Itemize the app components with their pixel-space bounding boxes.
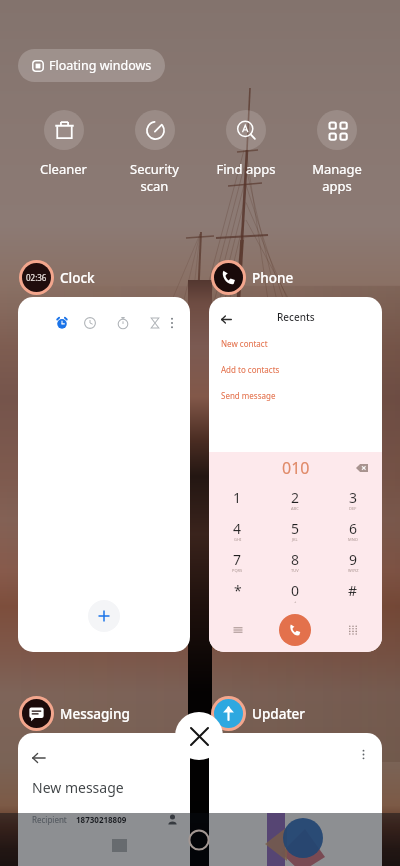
staticText: 4 xyxy=(233,519,242,538)
staticText: 9 xyxy=(349,550,358,569)
staticText: Clock xyxy=(60,269,95,287)
staticText: # xyxy=(348,581,358,600)
button[interactable]: 8 xyxy=(266,546,324,577)
staticText: Floating windows xyxy=(49,57,152,74)
staticText: 7 xyxy=(233,550,242,569)
staticText: WXYZ xyxy=(348,568,359,573)
button[interactable]: Stopwatch xyxy=(117,317,129,329)
staticText: Recents xyxy=(277,310,315,324)
staticText: PQRS xyxy=(232,568,243,573)
button[interactable]: 5 xyxy=(266,515,324,546)
staticText: Phone xyxy=(252,269,294,287)
staticText: 6 xyxy=(349,519,358,538)
button[interactable]: Security scan xyxy=(109,110,200,195)
button[interactable]: Menu xyxy=(233,625,243,635)
staticText: TUV xyxy=(291,568,299,573)
button[interactable]: 2 xyxy=(266,484,324,515)
button[interactable]: 1 xyxy=(209,484,266,515)
button[interactable]: # xyxy=(324,577,382,608)
button[interactable]: Close all xyxy=(175,712,223,760)
button[interactable]: 02:36 xyxy=(19,260,95,295)
button[interactable]: 3 xyxy=(324,484,382,515)
staticText: * xyxy=(234,581,242,600)
staticText: Send message xyxy=(221,390,276,401)
staticText: 02:36 xyxy=(26,272,47,283)
button[interactable]: * xyxy=(209,577,266,608)
button[interactable]: Back xyxy=(32,751,46,765)
button[interactable]: Timer xyxy=(149,317,161,329)
button[interactable]: Floating windows xyxy=(18,49,165,82)
staticText: GHI xyxy=(234,537,242,542)
staticText: ABC xyxy=(291,506,299,511)
button[interactable]: 0 xyxy=(266,577,324,608)
staticText: New contact xyxy=(221,338,268,349)
button[interactable]: Backspace xyxy=(356,462,368,474)
staticText: 8 xyxy=(291,550,300,569)
staticText: 2 xyxy=(291,488,300,507)
staticText: + xyxy=(294,599,297,604)
button[interactable]: Phone xyxy=(211,260,294,295)
button[interactable]: Updater xyxy=(211,696,306,731)
button[interactable]: Keypad xyxy=(348,625,358,635)
button[interactable]: Back xyxy=(221,314,232,325)
button[interactable]: Add alarm xyxy=(88,600,120,632)
button[interactable]: Home xyxy=(187,828,211,852)
button[interactable]: More options xyxy=(166,317,178,329)
staticText: Recipient xyxy=(32,814,67,825)
button[interactable]: World clock xyxy=(84,317,96,329)
button[interactable]: 6 xyxy=(324,515,382,546)
button[interactable]: 9 xyxy=(324,546,382,577)
staticText: Find apps xyxy=(216,160,276,178)
staticText: JKL xyxy=(292,537,298,542)
button[interactable]: Contacts xyxy=(167,814,178,825)
button[interactable]: Cleaner xyxy=(18,110,109,178)
staticText: New message xyxy=(32,778,124,797)
staticText: Messaging xyxy=(60,705,130,723)
staticText: 010 xyxy=(282,457,310,479)
staticText: MNO xyxy=(348,537,358,542)
staticText: Updater xyxy=(252,705,306,723)
staticText: 1 xyxy=(233,488,242,507)
staticText: 18730218809 xyxy=(76,814,127,825)
staticText: 5 xyxy=(291,519,300,538)
staticText: Security scan xyxy=(130,160,179,195)
button[interactable]: 4 xyxy=(209,515,266,546)
staticText: Cleaner xyxy=(40,160,87,178)
staticText: DEF xyxy=(349,506,357,511)
button[interactable]: Manage apps xyxy=(291,110,382,195)
staticText: 3 xyxy=(349,488,358,507)
button[interactable]: 7 xyxy=(209,546,266,577)
button[interactable]: Call xyxy=(279,614,311,646)
button[interactable]: Find apps xyxy=(200,110,291,178)
staticText: Manage apps xyxy=(312,160,362,195)
button[interactable]: Messaging xyxy=(19,696,130,731)
staticText: Add to contacts xyxy=(221,364,280,375)
button[interactable]: More options xyxy=(358,749,369,760)
button[interactable]: Alarm xyxy=(56,317,68,329)
staticText: 0 xyxy=(291,581,300,600)
